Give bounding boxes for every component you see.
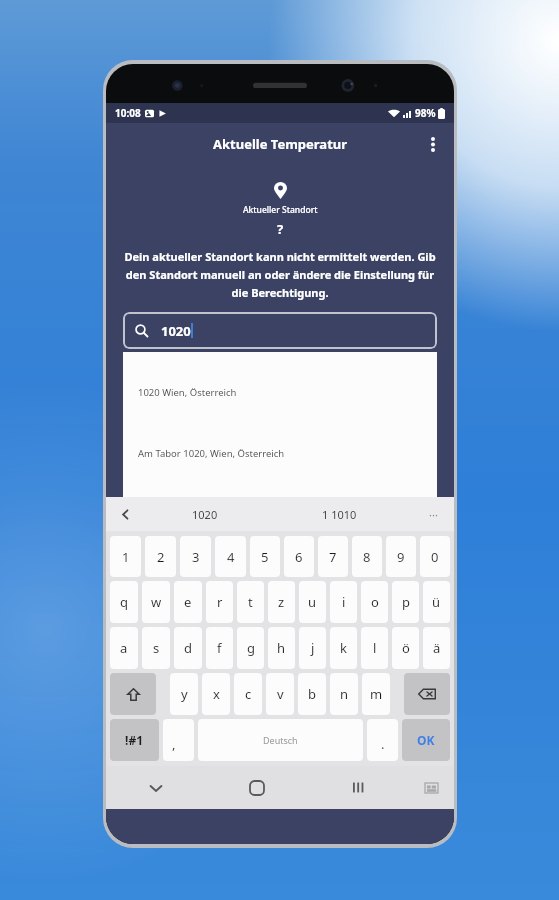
staticText: ü	[432, 593, 441, 611]
staticText: ,	[172, 735, 176, 753]
button[interactable]: More options	[418, 129, 448, 159]
button[interactable]: More suggestions	[412, 497, 454, 531]
staticText: c	[245, 685, 252, 703]
staticText: 1020	[192, 507, 218, 522]
staticText: 7	[329, 548, 337, 566]
button[interactable]: e	[174, 581, 202, 623]
button[interactable]: 6	[284, 536, 314, 577]
button[interactable]: p	[392, 581, 419, 623]
staticText: 5	[261, 548, 269, 566]
button[interactable]: Key	[110, 673, 156, 715]
button[interactable]: y	[170, 673, 198, 715]
button[interactable]: m	[362, 673, 390, 715]
button[interactable]: l	[361, 627, 388, 669]
button[interactable]: 8	[352, 536, 382, 577]
staticText: 9	[397, 548, 405, 566]
staticText: 6	[295, 548, 303, 566]
button[interactable]: 1020	[123, 312, 437, 349]
staticText: 1 1010	[322, 507, 357, 522]
button[interactable]: u	[299, 581, 326, 623]
staticText: o	[371, 593, 379, 611]
button[interactable]: .	[367, 719, 398, 761]
staticText: e	[184, 593, 192, 611]
staticText: l	[373, 639, 377, 657]
staticText: g	[247, 639, 255, 657]
staticText: Dein aktueller Standort kann nicht ermit…	[120, 249, 440, 300]
button[interactable]: 1	[110, 536, 141, 577]
staticText: Aktueller Standort	[243, 204, 318, 216]
button[interactable]: 1020	[144, 497, 266, 531]
staticText: 1	[122, 548, 130, 566]
button[interactable]: 9	[386, 536, 416, 577]
button[interactable]: d	[174, 627, 202, 669]
button[interactable]: v	[266, 673, 294, 715]
button[interactable]: g	[237, 627, 264, 669]
button[interactable]: 1 1010	[266, 497, 412, 531]
button[interactable]: c	[234, 673, 262, 715]
staticText: Aktuelle Temperatur	[213, 135, 348, 153]
staticText: h	[277, 639, 286, 657]
staticText: i	[342, 593, 346, 611]
button[interactable]: b	[298, 673, 326, 715]
button[interactable]: r	[206, 581, 233, 623]
button[interactable]: h	[268, 627, 295, 669]
staticText: t	[248, 593, 253, 611]
button[interactable]: OK	[402, 719, 450, 761]
button[interactable]: t	[237, 581, 264, 623]
staticText: q	[120, 593, 128, 611]
staticText: ä	[433, 639, 441, 657]
button[interactable]: Deutsch	[198, 719, 363, 761]
staticText: Am Tabor 1020, Wien, Österreich	[138, 447, 285, 460]
button[interactable]: a	[110, 627, 138, 669]
button[interactable]: w	[142, 581, 170, 623]
button[interactable]: f	[206, 627, 233, 669]
button[interactable]: Hide keyboard	[106, 766, 206, 809]
button[interactable]: s	[142, 627, 170, 669]
staticText: w	[151, 593, 162, 611]
button[interactable]: ö	[392, 627, 419, 669]
staticText: !#1	[125, 732, 144, 748]
button[interactable]: j	[299, 627, 326, 669]
button[interactable]: n	[330, 673, 358, 715]
button[interactable]: ä	[423, 627, 450, 669]
button[interactable]: ,	[163, 719, 194, 761]
button[interactable]: q	[110, 581, 138, 623]
button[interactable]: o	[361, 581, 388, 623]
staticText: n	[340, 685, 349, 703]
button[interactable]: 0	[420, 536, 450, 577]
staticText: j	[311, 639, 315, 657]
staticText: 0	[431, 548, 439, 566]
button[interactable]: Key	[404, 673, 450, 715]
button[interactable]: 7	[318, 536, 348, 577]
staticText: 10:08	[115, 106, 141, 120]
staticText: ···	[429, 507, 438, 522]
staticText: x	[213, 685, 220, 703]
button[interactable]: x	[202, 673, 230, 715]
staticText: z	[278, 593, 285, 611]
button[interactable]: Previous suggestions	[106, 497, 144, 531]
staticText: b	[308, 685, 316, 703]
button[interactable]: 1020 Wien, Österreich	[123, 352, 437, 399]
staticText: 1020	[161, 322, 191, 340]
button[interactable]: 4	[215, 536, 246, 577]
staticText: 3	[192, 548, 200, 566]
button[interactable]: z	[268, 581, 295, 623]
button[interactable]: i	[330, 581, 357, 623]
staticText: r	[217, 593, 223, 611]
staticText: Deutsch	[263, 734, 298, 746]
button[interactable]: 2	[145, 536, 176, 577]
button[interactable]: k	[330, 627, 357, 669]
button[interactable]: !#1	[110, 719, 159, 761]
staticText: a	[120, 639, 128, 657]
button[interactable]: 3	[180, 536, 211, 577]
staticText: p	[402, 593, 410, 611]
staticText: ö	[402, 639, 410, 657]
button[interactable]: Keyboard layout	[408, 766, 454, 809]
button[interactable]: Am Tabor 1020, Wien, Österreich	[123, 399, 437, 460]
button[interactable]: 5	[250, 536, 280, 577]
button[interactable]: Recent apps	[307, 766, 408, 809]
button[interactable]: ü	[423, 581, 450, 623]
staticText: k	[340, 639, 347, 657]
button[interactable]: Home	[206, 766, 307, 809]
